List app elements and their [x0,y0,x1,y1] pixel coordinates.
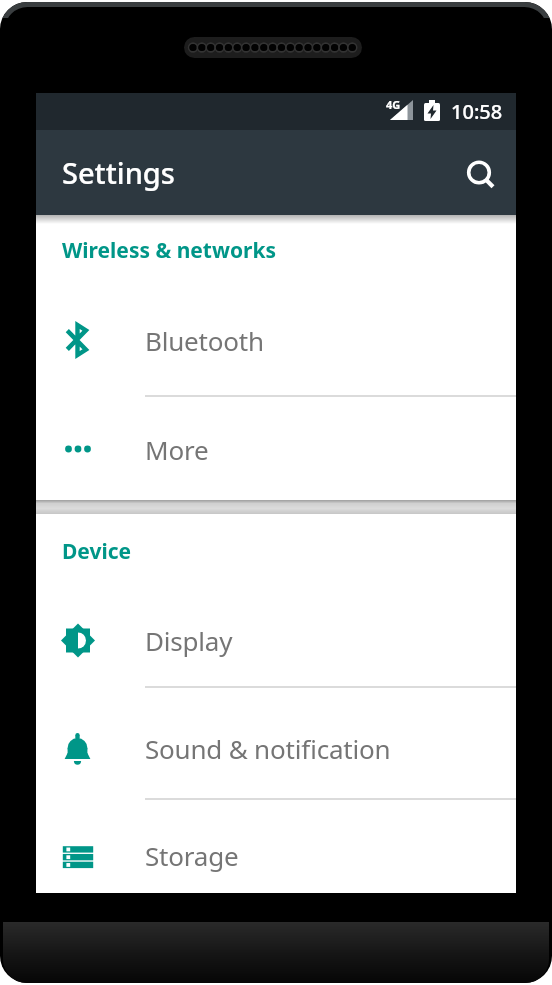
button[interactable] [455,148,503,196]
button[interactable]: Bluetooth [36,286,516,394]
staticText: Wireless & networks [62,236,276,265]
button[interactable]: Storage [36,801,516,893]
staticText: Storage [145,838,239,873]
staticText: Sound & notification [145,731,391,766]
button[interactable]: Sound & notification [36,694,516,802]
button[interactable]: Display [36,586,516,694]
staticText: Bluetooth [145,323,264,358]
staticText: Display [145,623,233,658]
button[interactable]: More [36,395,516,503]
staticText: 10:58 [451,98,503,125]
staticText: Settings [62,153,175,192]
staticText: Device [62,537,132,566]
staticText: 4G [386,97,401,112]
staticText: More [145,432,209,467]
